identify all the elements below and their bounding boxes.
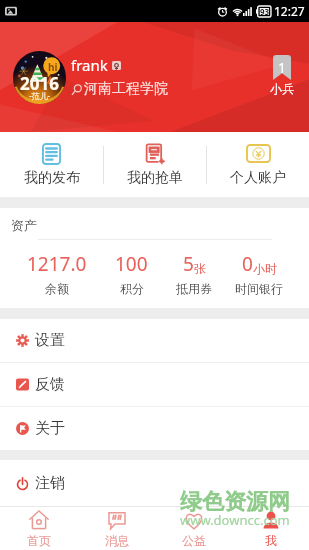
staticText: 2016 — [20, 72, 59, 95]
staticText: 12:27 — [274, 3, 305, 19]
button[interactable]: 关于 — [0, 407, 309, 450]
button[interactable]: 消息 — [78, 507, 155, 550]
button[interactable]: 注销 — [0, 460, 309, 506]
staticText: 注销 — [35, 474, 65, 493]
staticText: 小时 — [253, 261, 277, 276]
staticText: 时间银行 — [235, 281, 283, 296]
staticText: 关于 — [35, 419, 65, 438]
button[interactable]: 我 — [232, 507, 309, 550]
button[interactable]: 设置 — [0, 319, 309, 362]
staticText: 绿色资源网 — [180, 488, 290, 516]
staticText: 消息 — [105, 533, 129, 548]
button[interactable]: 1217.0 — [18, 251, 95, 296]
button[interactable]: 我的发布 — [0, 132, 103, 197]
button[interactable]: 1 — [266, 55, 298, 96]
button[interactable]: 个人账户 — [207, 132, 309, 197]
staticText: 反馈 — [35, 375, 65, 394]
button[interactable]: 0 — [220, 251, 298, 296]
staticText: 0 — [242, 251, 253, 277]
button[interactable]: 反馈 — [0, 363, 309, 406]
staticText: 我 — [265, 533, 277, 548]
staticText: 余额 — [45, 281, 69, 296]
staticText: 河南工程学院 — [84, 80, 168, 98]
staticText: 我的抢单 — [127, 169, 183, 187]
staticText: -范儿- — [29, 90, 51, 101]
staticText: 5 — [183, 251, 194, 277]
button[interactable]: Profile avatar — [13, 51, 66, 104]
staticText: 设置 — [35, 331, 65, 350]
staticText: 小兵 — [270, 81, 294, 96]
staticText: 1 — [278, 58, 287, 77]
staticText: 个人账户 — [230, 169, 286, 187]
button[interactable]: 我的抢单 — [104, 132, 206, 197]
staticText: www.downcc.com — [180, 511, 290, 529]
staticText: 首页 — [27, 533, 51, 548]
staticText: hi — [48, 60, 58, 74]
staticText: 93 — [260, 6, 270, 17]
staticText: 100 — [115, 251, 148, 277]
staticText: 我的发布 — [24, 169, 80, 187]
staticText: 1217.0 — [27, 251, 87, 277]
staticText: 公益 — [182, 533, 206, 548]
button[interactable]: 5 — [168, 251, 220, 296]
staticText: 抵用券 — [176, 281, 212, 296]
staticText: frank — [71, 55, 108, 75]
staticText: 张 — [194, 261, 206, 276]
button[interactable]: 公益 — [155, 507, 232, 550]
button[interactable]: 100 — [95, 251, 168, 296]
button[interactable]: 首页 — [0, 507, 78, 550]
staticText: 积分 — [120, 281, 144, 296]
staticText: 资产 — [11, 217, 37, 233]
